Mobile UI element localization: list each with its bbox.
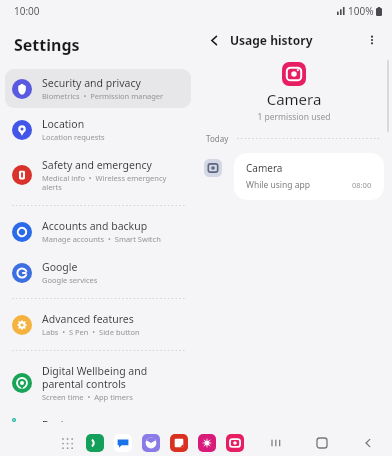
button[interactable]: Device care: [5, 411, 191, 429]
staticText: Location: [42, 117, 85, 131]
button[interactable]: Apps: [58, 434, 76, 452]
staticText: Manage accounts • Smart Switch: [42, 234, 161, 244]
staticText: Biometrics • Permission manager: [42, 91, 164, 101]
staticText: Safety and emergency: [42, 158, 152, 172]
button[interactable]: Location: [5, 110, 191, 149]
staticText: While using app: [246, 179, 310, 191]
button[interactable]: Notes: [170, 434, 188, 452]
staticText: Camera: [246, 161, 283, 175]
staticText: Device care: [42, 418, 99, 422]
staticText: Advanced features: [42, 312, 134, 326]
staticText: Accounts and backup: [42, 219, 148, 233]
staticText: Screen time • App timers: [42, 392, 133, 402]
staticText: Security and privacy: [42, 76, 141, 90]
button[interactable]: Gallery: [198, 434, 216, 452]
staticText: 10:00: [14, 4, 40, 18]
button[interactable]: Advanced features: [5, 305, 191, 344]
button[interactable]: Camera: [234, 153, 384, 200]
button[interactable]: Back: [202, 28, 226, 52]
button[interactable]: Internet: [142, 434, 160, 452]
button[interactable]: Safety and emergency: [5, 151, 191, 199]
staticText: Labs • S Pen • Side button: [42, 327, 140, 337]
button[interactable]: Home: [312, 433, 332, 453]
staticText: Google: [42, 260, 78, 274]
button[interactable]: Recents: [266, 433, 286, 453]
staticText: Camera: [196, 89, 392, 109]
staticText: Settings: [14, 34, 80, 56]
staticText: 100%: [348, 4, 374, 18]
staticText: Google services: [42, 275, 98, 285]
staticText: 08:00: [352, 180, 372, 190]
button[interactable]: Accounts and backup: [5, 212, 191, 251]
button[interactable]: Back: [358, 433, 378, 453]
button[interactable]: Messages: [114, 434, 132, 452]
staticText: Today: [206, 133, 229, 144]
staticText: Digital Wellbeing and parental controls: [42, 364, 183, 391]
staticText: Usage history: [230, 32, 313, 48]
staticText: 1 permission used: [196, 111, 392, 123]
button[interactable]: More options: [360, 28, 384, 52]
button[interactable]: Security and privacy: [5, 69, 191, 108]
button[interactable]: Digital Wellbeing and parental controls: [5, 357, 191, 409]
staticText: Location requests: [42, 132, 105, 142]
staticText: Medical info • Wireless emergency alerts: [42, 173, 183, 192]
button[interactable]: Phone: [86, 434, 104, 452]
button[interactable]: Google: [5, 253, 191, 292]
button[interactable]: Camera: [226, 434, 244, 452]
